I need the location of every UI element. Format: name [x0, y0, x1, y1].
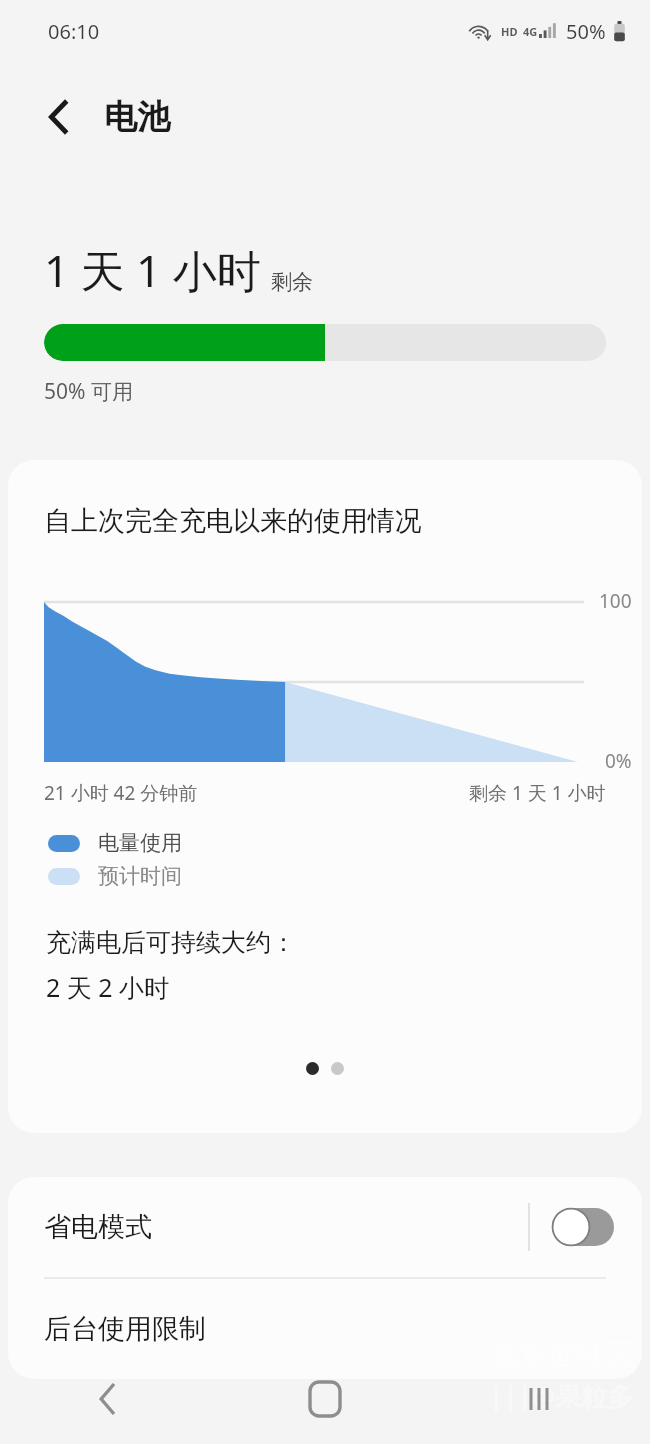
staticText: 自上次完全充电以来的使用情况: [44, 504, 422, 538]
staticText: 后台使用限制: [44, 1312, 206, 1346]
staticText: 充满电后可持续大约：: [46, 927, 296, 958]
staticText: 06:10: [48, 18, 100, 45]
staticText: 1 天 1 小时: [44, 240, 261, 300]
staticText: 50%: [566, 18, 606, 45]
staticText: 50% 可用: [44, 377, 133, 406]
button[interactable]: 省电模式: [8, 1177, 642, 1277]
staticText: 0%: [605, 748, 632, 774]
staticText: 2 天 2 小时: [46, 970, 170, 1004]
button[interactable]: Recent apps: [433, 1354, 650, 1444]
button[interactable]: 后台使用限制: [8, 1279, 642, 1379]
button[interactable]: 自上次完全充电以来的使用情况: [8, 460, 642, 1133]
button[interactable]: Back: [0, 1354, 216, 1444]
button[interactable]: Power saving mode toggle: [552, 1208, 614, 1246]
staticText: 剩余 1 天 1 小时: [469, 780, 606, 806]
staticText: 电池: [104, 96, 170, 138]
staticText: 21 小时 42 分钟前: [44, 780, 198, 806]
staticText: 预计时间: [98, 863, 182, 889]
staticText: 4G: [523, 24, 538, 39]
staticText: 电量使用: [98, 830, 182, 856]
staticText: 省电模式: [44, 1210, 152, 1244]
staticText: HD: [501, 24, 518, 39]
staticText: |||@果粒多: [489, 1378, 634, 1414]
button[interactable]: Back: [32, 89, 88, 145]
button[interactable]: Home: [216, 1354, 433, 1444]
staticText: 剩余: [271, 269, 313, 295]
staticText: 100: [599, 588, 632, 614]
